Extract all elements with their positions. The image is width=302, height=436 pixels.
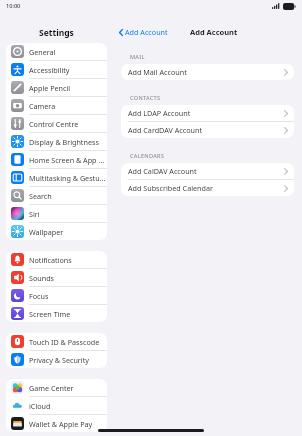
staticText: Add LDAP Account [128, 108, 191, 118]
staticText: Screen Time [29, 309, 71, 319]
button[interactable]: Notifications [6, 251, 107, 269]
staticText: Privacy & Security [29, 355, 89, 365]
button[interactable]: Siri [6, 205, 107, 223]
button[interactable]: Display & Brightness [6, 133, 107, 151]
staticText: Add CalDAV Account [128, 166, 197, 176]
button[interactable]: Apple Pencil [6, 79, 107, 97]
staticText: MAIL [130, 53, 145, 61]
button[interactable]: Add CalDAV Account [121, 163, 294, 180]
staticText: Focus [29, 291, 49, 301]
button[interactable]: Wallpaper [6, 223, 107, 240]
staticText: CONTACTS [130, 94, 161, 102]
button[interactable]: iCloud [6, 397, 107, 415]
staticText: Sounds [29, 273, 55, 283]
staticText: iCloud [29, 401, 51, 411]
staticText: Add Account [190, 27, 238, 37]
button[interactable]: Add Subscribed Calendar [121, 180, 294, 196]
button[interactable]: Touch ID & Passcode [6, 333, 107, 351]
staticText: Display & Brightness [29, 137, 99, 147]
button[interactable]: Game Center [6, 379, 107, 397]
staticText: Siri [29, 209, 40, 219]
staticText: Wallet & Apple Pay [29, 419, 93, 429]
staticText: Home Screen & App Library [29, 155, 107, 165]
staticText: Settings [39, 27, 74, 39]
button[interactable]: Accessibility [6, 61, 107, 79]
button[interactable]: Sounds [6, 269, 107, 287]
button[interactable]: Control Centre [6, 115, 107, 133]
button[interactable]: Focus [6, 287, 107, 305]
staticText: Wallpaper [29, 227, 64, 237]
staticText: Control Centre [29, 119, 79, 129]
button[interactable]: Privacy & Security [6, 351, 107, 368]
button[interactable]: Home Screen & App Library [6, 151, 107, 169]
staticText: CALENDARS [130, 152, 165, 160]
button[interactable]: Wallet & Apple Pay [6, 415, 107, 432]
button[interactable]: Screen Time [6, 305, 107, 322]
button[interactable]: Add LDAP Account [121, 105, 294, 122]
staticText: Add Mail Account [128, 67, 187, 77]
button[interactable]: Search [6, 187, 107, 205]
staticText: Accessibility [29, 65, 70, 75]
button[interactable]: Camera [6, 97, 107, 115]
staticText: Multitasking & Gestures [29, 173, 107, 183]
staticText: Add Account [125, 27, 168, 37]
staticText: Game Center [29, 383, 74, 393]
button[interactable]: Add Mail Account [121, 64, 294, 80]
staticText: Camera [29, 101, 56, 111]
staticText: General [29, 47, 56, 57]
button[interactable]: Add CardDAV Account [121, 122, 294, 138]
button[interactable]: Multitasking & Gestures [6, 169, 107, 187]
staticText: Add Subscribed Calendar [128, 183, 213, 193]
button[interactable]: General [6, 43, 107, 61]
staticText: Notifications [29, 255, 72, 265]
staticText: Search [29, 191, 52, 201]
staticText: 10:00 [6, 2, 21, 10]
staticText: Add CardDAV Account [128, 125, 203, 135]
staticText: Apple Pencil [29, 83, 71, 93]
staticText: Touch ID & Passcode [29, 337, 100, 347]
button[interactable]: Add Account [113, 25, 172, 39]
